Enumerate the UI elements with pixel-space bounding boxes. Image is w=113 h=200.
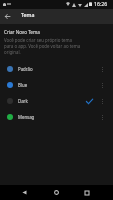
button[interactable]: More options (97, 109, 108, 125)
button[interactable]: Recent apps (79, 185, 94, 200)
staticText: 16:26 (94, 0, 108, 7)
staticText: Padrão (18, 66, 33, 72)
button[interactable]: Back (0, 9, 15, 24)
staticText: Tema (21, 11, 35, 18)
staticText: Blue (18, 82, 28, 88)
staticText: Você pode criar seu próprio tema para o … (4, 37, 81, 55)
button[interactable]: Mensag (0, 109, 113, 125)
button[interactable]: Blue (0, 77, 113, 93)
staticText: Mensag (18, 114, 35, 120)
button[interactable]: More options (97, 61, 108, 77)
button[interactable]: Back (17, 185, 32, 200)
button[interactable]: Padrão (0, 61, 113, 77)
button[interactable]: More options (97, 77, 108, 93)
button[interactable]: Home (49, 185, 64, 200)
button[interactable]: Dark (0, 93, 113, 109)
staticText: Criar Novo Tema (4, 29, 40, 35)
staticText: Dark (18, 98, 28, 104)
button[interactable]: More options (97, 93, 108, 109)
